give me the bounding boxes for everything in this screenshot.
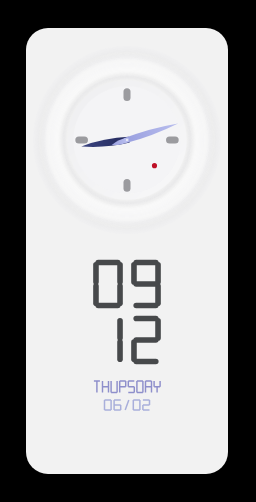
button[interactable]: Analog clock: [39, 52, 215, 228]
button[interactable]: Digital time 09:12 Thursday 06/02: [26, 253, 228, 418]
